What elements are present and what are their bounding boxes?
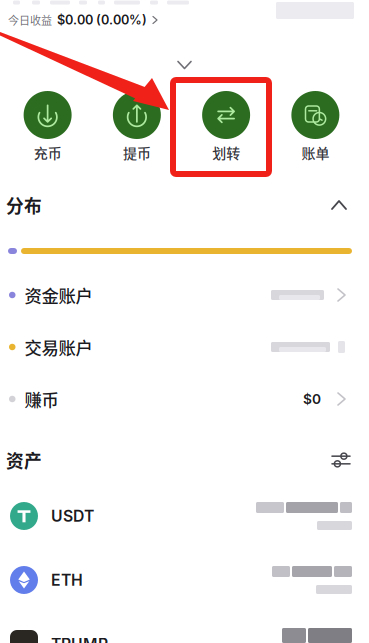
- staticText: TRUMP: [51, 634, 108, 643]
- staticText: 分布: [6, 192, 42, 218]
- button[interactable]: 赚币: [0, 389, 369, 409]
- button[interactable]: 充币: [3, 91, 92, 159]
- button[interactable]: USDT: [0, 498, 369, 534]
- button[interactable]: Filter assets: [332, 452, 369, 468]
- staticText: 赚币: [24, 386, 58, 412]
- button[interactable]: 资金账户: [0, 285, 369, 305]
- staticText: 账单: [301, 142, 329, 163]
- button[interactable]: 划转: [181, 91, 271, 159]
- button[interactable]: 今日收益: [8, 11, 369, 29]
- button[interactable]: 分布: [0, 195, 369, 215]
- staticText: $0.00 (0.00%): [57, 12, 147, 28]
- staticText: 资金账户: [24, 282, 92, 308]
- staticText: 划转: [212, 142, 240, 163]
- staticText: 充币: [34, 142, 62, 163]
- staticText: USDT: [51, 506, 94, 525]
- button[interactable]: Collapse balance: [0, 61, 369, 69]
- staticText: 资产: [6, 447, 42, 473]
- staticText: 提币: [123, 142, 151, 163]
- staticText: ETH: [51, 570, 83, 589]
- button[interactable]: 交易账户: [0, 337, 369, 357]
- button[interactable]: 账单: [271, 91, 360, 159]
- staticText: $0: [303, 391, 321, 407]
- staticText: 交易账户: [24, 334, 92, 360]
- button[interactable]: TRUMP: [0, 626, 369, 643]
- button[interactable]: ETH: [0, 562, 369, 598]
- button[interactable]: 提币: [92, 91, 181, 159]
- staticText: 今日收益: [8, 12, 52, 28]
